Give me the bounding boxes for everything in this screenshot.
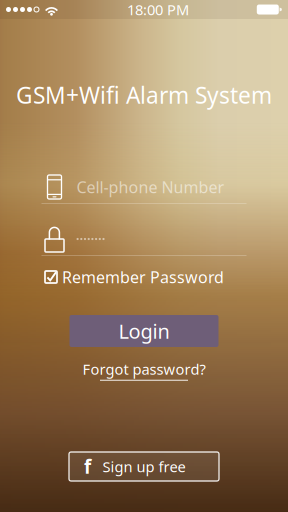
- staticText: GSM+Wifi Alarm System: [16, 80, 272, 110]
- staticText: Sign up free: [102, 457, 185, 476]
- staticText: Remember Password: [62, 266, 224, 288]
- staticText: f: [84, 454, 91, 479]
- staticText: Cell-phone Number: [76, 176, 224, 198]
- staticText: 18:00 PM: [127, 0, 189, 19]
- staticText: Forgot password?: [82, 359, 205, 379]
- button[interactable]: Remember Password: [0, 268, 288, 286]
- button[interactable]: Login: [69, 315, 218, 347]
- button[interactable]: Forgot password?: [82, 361, 205, 379]
- staticText: Login: [118, 318, 169, 344]
- button[interactable]: f: [69, 452, 219, 481]
